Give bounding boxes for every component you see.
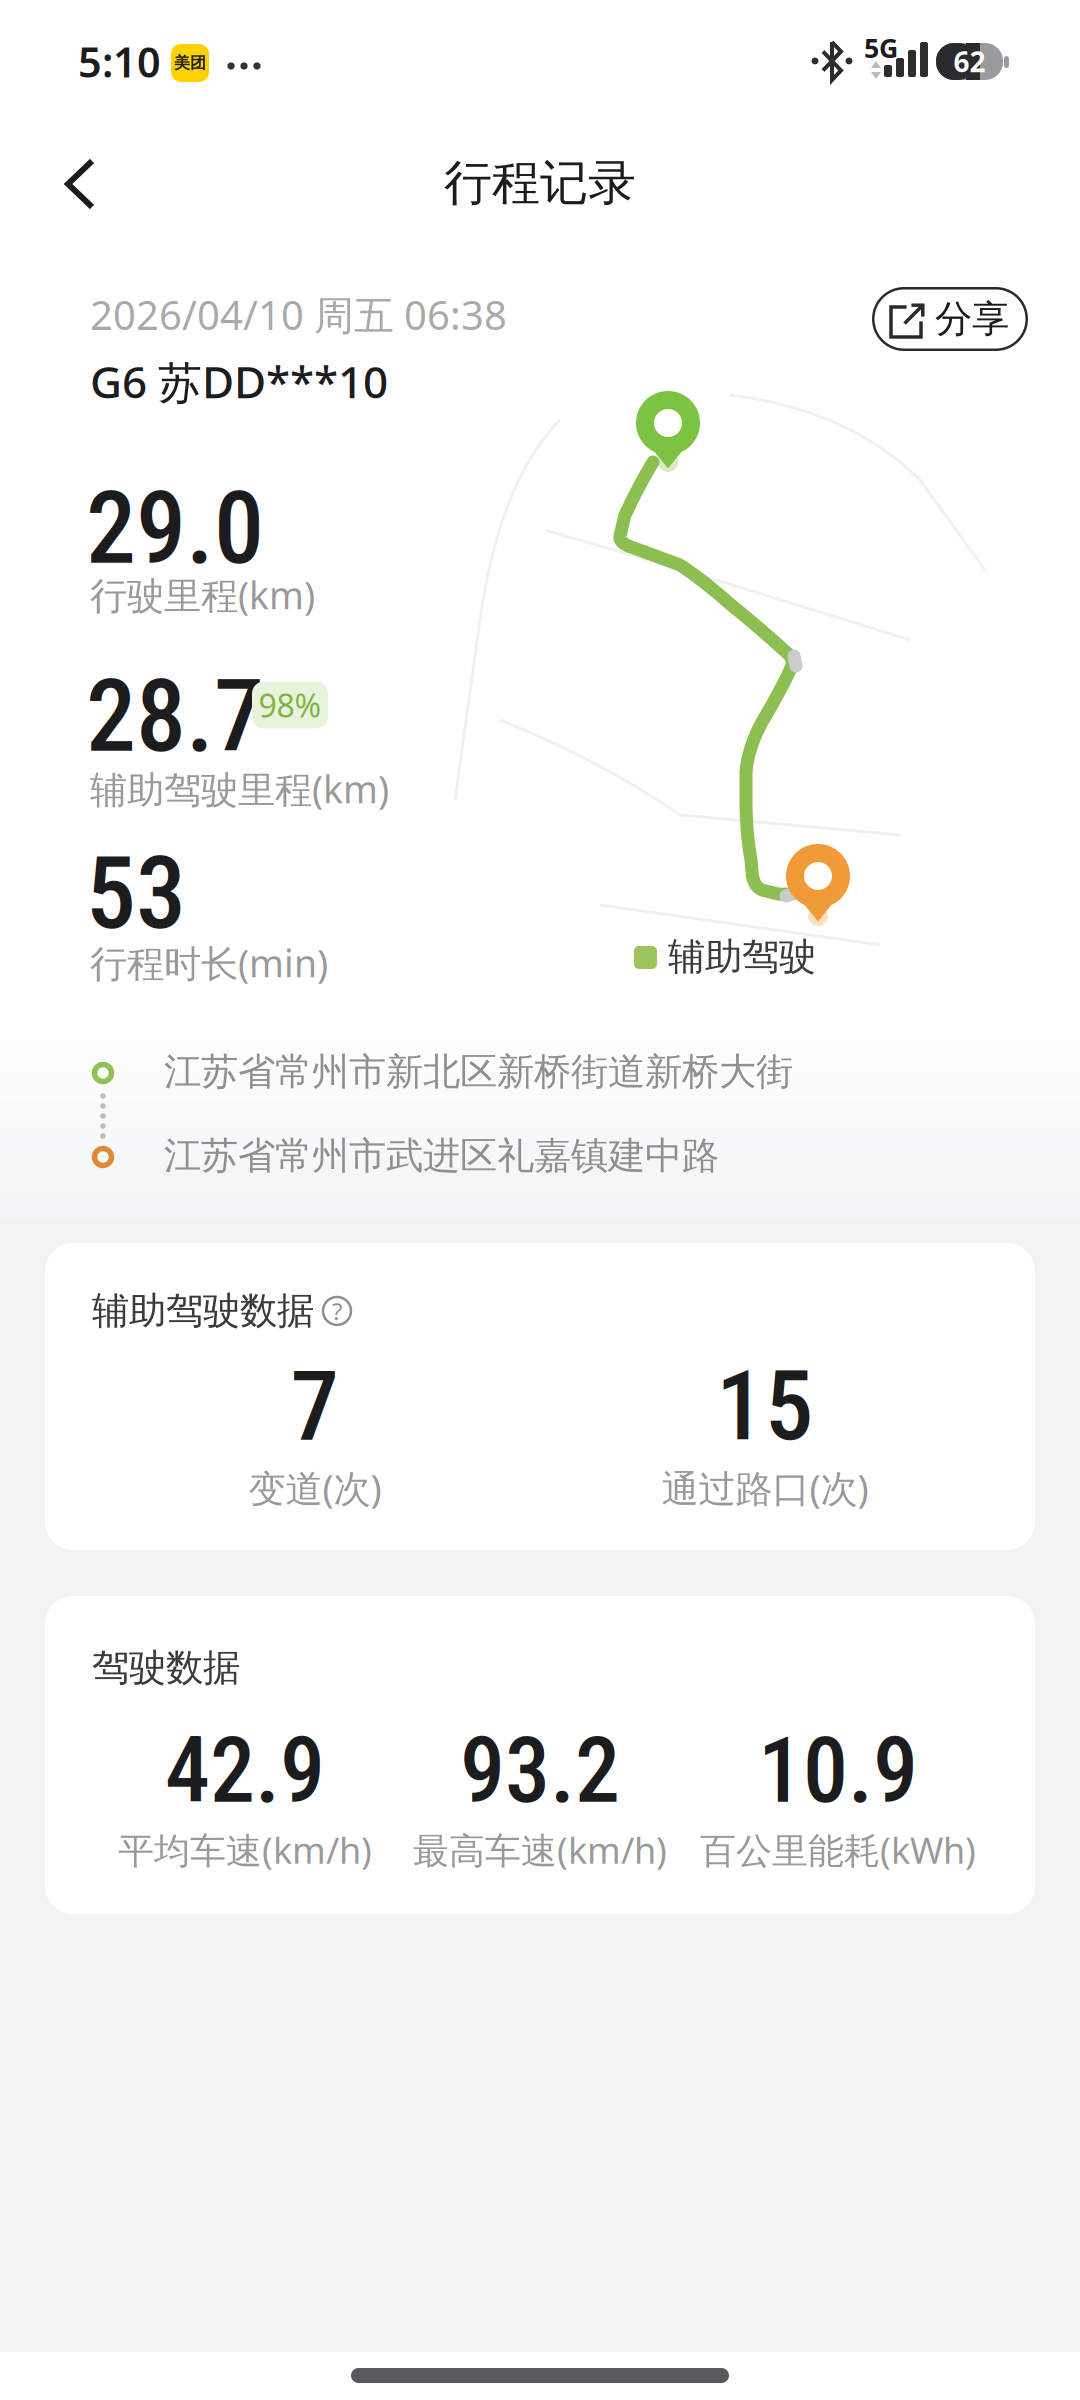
staticText: 29.0: [86, 470, 264, 587]
staticText: 辅助驾驶: [668, 934, 816, 980]
button[interactable]: [58, 154, 102, 214]
staticText: ?: [332, 1295, 342, 1327]
staticText: 行程记录: [444, 153, 636, 212]
staticText: 53: [86, 835, 186, 952]
staticText: 辅助驾驶数据: [92, 1288, 314, 1334]
staticText: 驾驶数据: [92, 1645, 240, 1691]
button[interactable]: 分享: [872, 287, 1028, 351]
staticText: 42.9: [165, 1718, 325, 1824]
staticText: 7: [290, 1349, 339, 1463]
staticText: 江苏省常州市武进区礼嘉镇建中路: [164, 1133, 719, 1179]
staticText: 江苏省常州市新北区新桥街道新桥大街: [164, 1049, 793, 1095]
button[interactable]: 美团: [171, 44, 209, 82]
staticText: 辅助驾驶里程(km): [90, 764, 389, 814]
staticText: 5:10: [78, 34, 161, 89]
staticText: 93.2: [460, 1718, 620, 1824]
staticText: 28.7: [86, 658, 264, 775]
staticText: 分享: [935, 296, 1009, 342]
staticText: 62: [953, 43, 985, 80]
staticText: 10.9: [758, 1718, 918, 1824]
staticText: 百公里能耗(kWh): [700, 1826, 976, 1874]
staticText: 变道(次): [248, 1463, 381, 1513]
staticText: 15: [716, 1349, 814, 1463]
staticText: 5G: [864, 30, 898, 65]
staticText: 通过路口(次): [661, 1463, 868, 1513]
staticText: 行驶里程(km): [90, 570, 315, 620]
staticText: G6 苏DD***10: [90, 352, 388, 411]
staticText: 美团: [174, 53, 206, 73]
staticText: 平均车速(km/h): [118, 1826, 372, 1874]
staticText: 行程时长(min): [90, 938, 328, 988]
staticText: 最高车速(km/h): [413, 1826, 667, 1874]
staticText: 98%: [258, 684, 321, 726]
staticText: 2026/04/10 周五 06:38: [90, 288, 507, 341]
